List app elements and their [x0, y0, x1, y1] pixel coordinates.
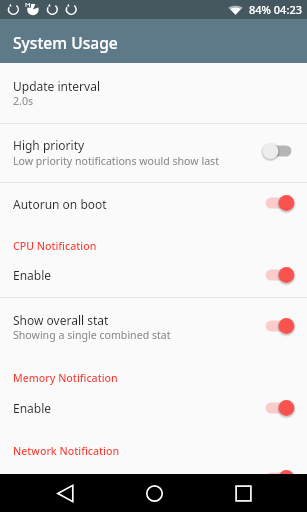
- button[interactable]: Network Notification: [0, 429, 307, 463]
- button[interactable]: Disable: [259, 315, 297, 337]
- staticText: Low priority notifications would show la…: [13, 154, 219, 168]
- button[interactable]: Enable: [0, 258, 307, 297]
- staticText: Autorun on boot: [13, 196, 107, 212]
- staticText: Update interval: [13, 78, 100, 94]
- button[interactable]: Home: [135, 474, 173, 512]
- button[interactable]: CPU Notification: [0, 224, 307, 258]
- staticText: Show overall stat: [13, 312, 109, 328]
- staticText: Enable: [13, 473, 52, 489]
- button[interactable]: Back: [46, 474, 84, 512]
- staticText: CPU Notification: [13, 239, 97, 253]
- button[interactable]: Disable: [259, 264, 297, 286]
- staticText: Showing a single combined stat: [13, 328, 171, 342]
- staticText: Network Notification: [13, 444, 120, 458]
- button[interactable]: Autorun on boot: [0, 183, 307, 224]
- button[interactable]: Disable: [259, 467, 297, 489]
- staticText: System Usage: [13, 32, 118, 53]
- button[interactable]: Memory Notification: [0, 356, 307, 390]
- staticText: 2.0s: [13, 94, 34, 108]
- staticText: Enable: [13, 400, 52, 416]
- button[interactable]: Update interval: [0, 63, 307, 123]
- button[interactable]: Show overall stat: [0, 298, 307, 356]
- button[interactable]: Enable: [0, 463, 307, 502]
- button[interactable]: Disable: [259, 192, 297, 214]
- button[interactable]: High priority: [0, 124, 307, 182]
- button[interactable]: Enable: [0, 390, 307, 429]
- staticText: Enable: [13, 267, 52, 283]
- button[interactable]: Disable: [259, 397, 297, 419]
- button[interactable]: Enable: [259, 140, 297, 162]
- staticText: High priority: [13, 137, 85, 153]
- staticText: Memory Notification: [13, 371, 118, 385]
- staticText: 84% 04:23: [249, 2, 302, 17]
- button[interactable]: Recents: [224, 474, 262, 512]
